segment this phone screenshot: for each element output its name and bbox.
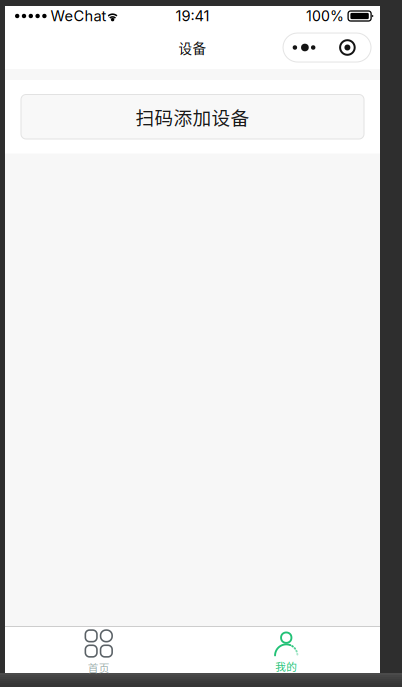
staticText: WeChat xyxy=(47,7,107,25)
staticText: 100% xyxy=(306,7,344,24)
staticText: 扫码添加设备 xyxy=(135,103,249,130)
button[interactable]: 首页 xyxy=(5,627,192,673)
staticText: 我的 xyxy=(275,658,297,674)
staticText: 19:41 xyxy=(175,7,209,25)
button[interactable]: 扫码添加设备 xyxy=(21,94,364,139)
staticText: 首页 xyxy=(88,660,110,675)
button[interactable]: More options xyxy=(283,33,371,62)
staticText: 设备 xyxy=(178,38,206,57)
button[interactable]: 我的 xyxy=(192,627,380,673)
